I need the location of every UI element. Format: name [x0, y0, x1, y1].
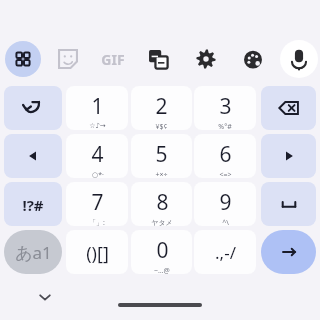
staticText: 1	[91, 92, 104, 121]
staticText: GIF	[101, 50, 125, 69]
button[interactable]: Space	[261, 182, 316, 226]
staticText: 8	[156, 188, 169, 217]
button[interactable]: 5	[131, 134, 192, 178]
button[interactable]: 1	[66, 86, 128, 130]
staticText: あa1	[15, 241, 52, 264]
button[interactable]: Settings	[190, 43, 222, 75]
staticText: 3	[219, 92, 232, 121]
staticText: %°#	[218, 122, 232, 130]
staticText: 0	[156, 236, 169, 265]
staticText: <=>	[219, 170, 232, 178]
button[interactable]: Move cursor right	[261, 134, 316, 178]
staticText: 7	[91, 188, 104, 217]
button[interactable]: Backspace	[261, 86, 316, 130]
button[interactable]: 7	[66, 182, 128, 226]
staticText: ☆♪→	[89, 122, 106, 130]
button[interactable]: .,-/	[194, 230, 256, 274]
button[interactable]: 9	[194, 182, 256, 226]
button[interactable]: Hide keyboard	[33, 285, 57, 309]
staticText: ^\	[222, 218, 229, 226]
button[interactable]: Move cursor left	[4, 134, 62, 178]
staticText: 2	[155, 92, 168, 121]
staticText: ヤタメ	[151, 218, 173, 226]
button[interactable]: Themes	[237, 43, 269, 75]
staticText: !?#	[22, 195, 44, 215]
staticText: ○*·	[92, 170, 104, 178]
button[interactable]: 0	[131, 230, 192, 274]
button[interactable]: Enter	[261, 230, 316, 274]
button[interactable]: Undo	[4, 86, 62, 130]
button[interactable]: ()[]	[66, 230, 128, 274]
button[interactable]: 2	[131, 86, 192, 130]
button[interactable]: !?#	[4, 182, 62, 226]
staticText: ()[]	[86, 241, 109, 266]
staticText: +×÷	[155, 170, 168, 178]
staticText: 5	[155, 140, 168, 169]
button[interactable]: あa1	[4, 230, 62, 274]
button[interactable]: 3	[194, 86, 256, 130]
button[interactable]: Translate	[142, 43, 174, 75]
button[interactable]: GIF	[93, 45, 133, 73]
button[interactable]: 6	[194, 134, 256, 178]
button[interactable]: Voice input	[280, 40, 318, 78]
staticText: 6	[219, 140, 232, 169]
staticText: .,-/	[215, 241, 236, 264]
staticText: ¥$¢	[155, 122, 168, 130]
staticText: ~…@	[154, 266, 170, 274]
button[interactable]: 4	[66, 134, 128, 178]
staticText: 9	[219, 188, 232, 217]
button[interactable]: Keyboard modes	[5, 41, 41, 77]
staticText: 「」:	[89, 218, 105, 226]
staticText: 4	[91, 140, 104, 169]
button[interactable]: 8	[131, 182, 192, 226]
button[interactable]: Stickers	[52, 43, 84, 75]
